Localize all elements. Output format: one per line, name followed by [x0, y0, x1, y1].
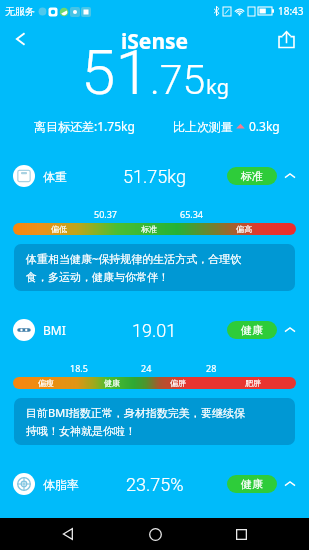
staticText: 离目标还差:1.75kg [34, 118, 135, 134]
staticText: 标准 [141, 224, 157, 234]
staticText: kg [206, 73, 229, 100]
staticText: 健康 [241, 323, 263, 337]
staticText: 51 [81, 36, 150, 109]
button[interactable]: Recents [222, 518, 260, 550]
staticText: 24 [141, 362, 152, 373]
staticText: 偏胖 [170, 378, 186, 388]
staticText: 肥胖 [245, 378, 261, 388]
staticText: 标准 [241, 169, 263, 183]
button[interactable]: 目前BMI指数正常，身材指数完美，要继续保 [14, 398, 295, 445]
staticText: 19.01 [132, 320, 177, 341]
button[interactable]: BMI [0, 316, 309, 344]
staticText: .75 [150, 56, 206, 104]
button[interactable]: 体脂率 [0, 470, 309, 498]
staticText: 体脂率 [43, 477, 79, 492]
button[interactable]: Back [49, 518, 87, 550]
staticText: 无服务 [5, 5, 35, 18]
staticText: 体重 [43, 169, 67, 184]
button[interactable]: Share [277, 22, 309, 56]
button[interactable]: 体重 [0, 162, 309, 190]
staticText: 65.34 [180, 208, 204, 219]
staticText: 体重相当健康~保持规律的生活方式，合理饮 [26, 251, 242, 266]
staticText: 偏低 [51, 224, 67, 234]
staticText: 18.5 [70, 362, 88, 373]
staticText: 偏高 [236, 224, 252, 234]
staticText: 51.75kg [123, 166, 186, 187]
staticText: 23.75% [126, 474, 184, 495]
button[interactable]: 体重相当健康~保持规律的生活方式，合理饮 [14, 244, 295, 291]
staticText: 目前BMI指数正常，身材指数完美，要继续保 [26, 405, 245, 420]
staticText: 28 [206, 362, 217, 373]
staticText: 偏瘦 [38, 378, 54, 388]
button[interactable]: Home [136, 518, 174, 550]
staticText: 18:43 [278, 4, 304, 18]
staticText: BMI [43, 322, 66, 338]
staticText: 0.3kg [249, 118, 280, 134]
button[interactable]: Back [0, 22, 40, 56]
staticText: 健康 [241, 477, 263, 491]
staticText: 食，多运动，健康与你常伴！ [26, 270, 169, 284]
staticText: 健康 [104, 378, 120, 388]
staticText: iSense [121, 27, 189, 56]
staticText: 持哦！女神就是你啦！ [26, 424, 136, 438]
staticText: 比上次测量 [173, 119, 233, 134]
staticText: 50.37 [94, 208, 118, 219]
